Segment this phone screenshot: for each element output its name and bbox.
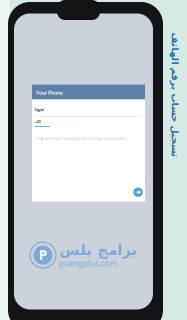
staticText: pramgplus.com (59, 258, 117, 269)
staticText: Please confirm your country code and ent… (36, 137, 128, 140)
staticText: Your Phone (36, 89, 63, 96)
button[interactable]: Next (133, 187, 143, 197)
staticText: برامج بلس (59, 241, 137, 258)
staticText: تسجيل حساب برقم الهاتف (112, 89, 187, 100)
staticText: +20 (35, 119, 41, 124)
staticText: - - - - - - - - - - (53, 119, 76, 124)
staticText: P (39, 246, 47, 264)
staticText: Egypt (35, 107, 45, 112)
